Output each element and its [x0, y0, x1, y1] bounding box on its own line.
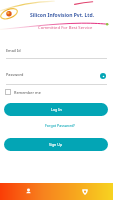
staticText: Committed For Best Service [38, 25, 93, 31]
button[interactable]: Forgot Password? [3, 120, 113, 130]
staticText: Sign Up [49, 142, 63, 147]
button[interactable]: Show password [100, 73, 106, 79]
button[interactable]: Sign Up [4, 138, 108, 151]
staticText: Log In [51, 107, 62, 112]
button[interactable]: Profile [0, 183, 56, 200]
staticText: Email Id [6, 48, 21, 53]
button[interactable]: Log In [4, 103, 108, 116]
staticText: Remember me [14, 90, 41, 95]
staticText: Forgot Password? [45, 123, 75, 128]
staticText: Password [6, 72, 24, 77]
button[interactable]: Contact us [56, 183, 113, 200]
staticText: Silicon Infovision Pvt. Ltd. [30, 12, 95, 19]
button[interactable]: Remember me [5, 89, 41, 95]
